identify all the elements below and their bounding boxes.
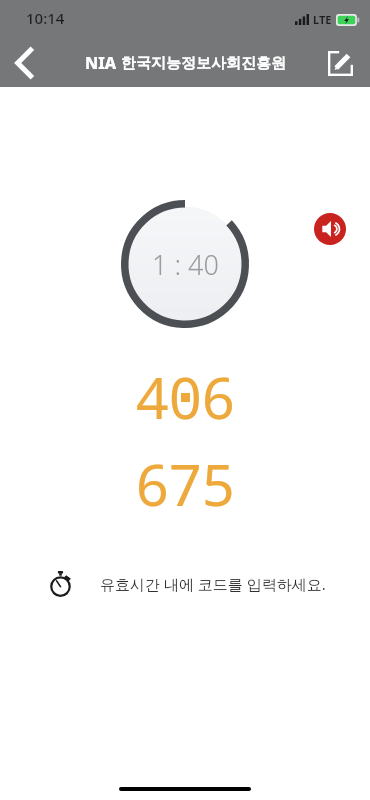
staticText: 5 xyxy=(202,445,235,523)
staticText: 유효시간 내에 코드를 입력하세요. xyxy=(100,574,326,594)
staticText: 한국지능정보사회진흥원 xyxy=(121,54,286,73)
staticText: 4 xyxy=(136,358,169,436)
staticText: 6 xyxy=(136,445,169,523)
staticText: 6 xyxy=(202,358,235,436)
staticText: 0 xyxy=(169,358,202,436)
staticText: NIA xyxy=(85,52,117,74)
button[interactable]: Sound on xyxy=(313,212,347,246)
staticText: LTE xyxy=(313,12,332,27)
staticText: 7 xyxy=(169,445,202,523)
button[interactable]: Edit xyxy=(318,41,362,85)
staticText: 1 : 40 xyxy=(152,246,219,283)
button[interactable]: Back xyxy=(0,39,48,87)
staticText: 10:14 xyxy=(26,8,65,28)
